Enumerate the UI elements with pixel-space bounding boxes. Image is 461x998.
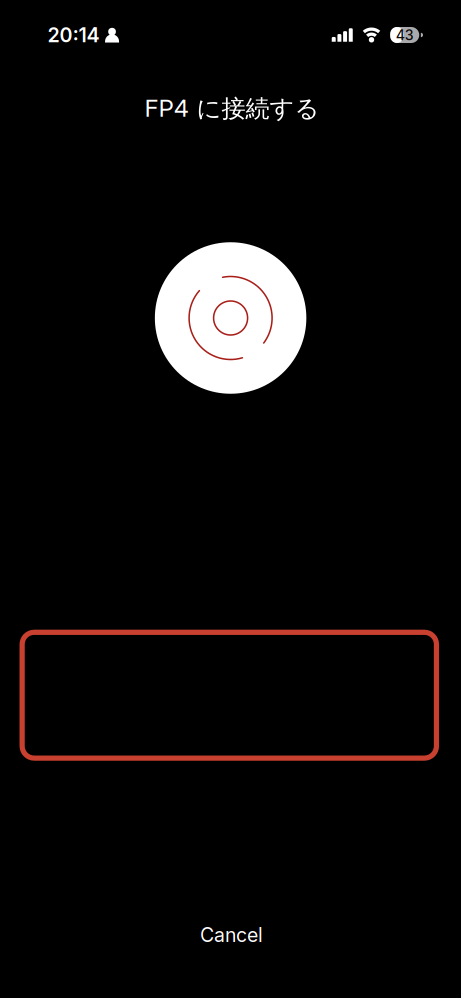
staticText: Cancel bbox=[200, 923, 263, 947]
button[interactable]: Cancel bbox=[141, 911, 321, 959]
button[interactable]: Pairing code field bbox=[20, 630, 439, 761]
staticText: 43 bbox=[396, 26, 414, 43]
staticText: FP4 に接続する bbox=[144, 93, 319, 124]
staticText: 20:14 bbox=[48, 23, 100, 47]
